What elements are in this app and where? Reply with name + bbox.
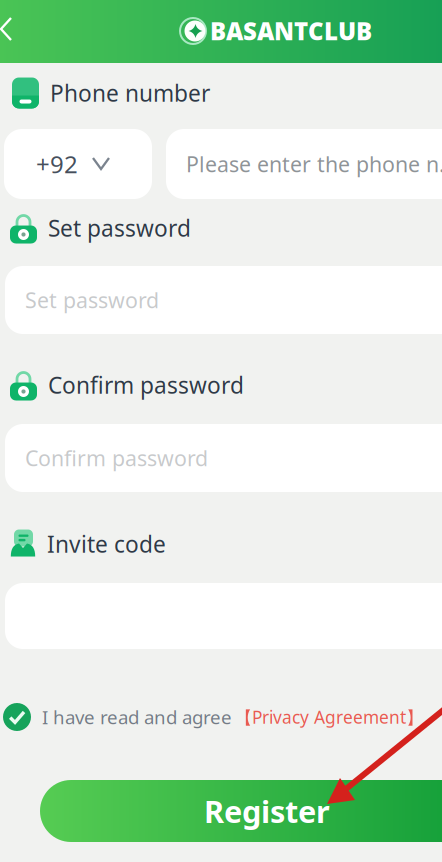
- staticText: BASANTCLUB: [210, 15, 372, 47]
- staticText: Confirm password: [25, 444, 208, 472]
- staticText: Register: [204, 791, 330, 831]
- button[interactable]: Set password: [5, 266, 442, 334]
- staticText: Invite code: [47, 529, 166, 559]
- button[interactable]: Confirm password: [5, 424, 442, 492]
- button[interactable]: I have read and agree: [3, 703, 42, 731]
- staticText: Phone number: [50, 78, 210, 108]
- staticText: Please enter the phone number: [186, 150, 442, 178]
- button[interactable]: +92: [4, 129, 152, 199]
- staticText: I have read and agree: [42, 705, 232, 729]
- button[interactable]: 【Privacy Agreement】: [232, 705, 423, 728]
- staticText: Confirm password: [48, 370, 244, 400]
- button[interactable]: Please enter the phone number: [166, 129, 442, 199]
- staticText: +92: [36, 148, 78, 180]
- staticText: Set password: [48, 213, 191, 243]
- staticText: Set password: [25, 286, 159, 314]
- button[interactable]: Back: [0, 8, 35, 50]
- button[interactable]: Register: [40, 780, 442, 842]
- staticText: 【Privacy Agreement】: [235, 705, 423, 728]
